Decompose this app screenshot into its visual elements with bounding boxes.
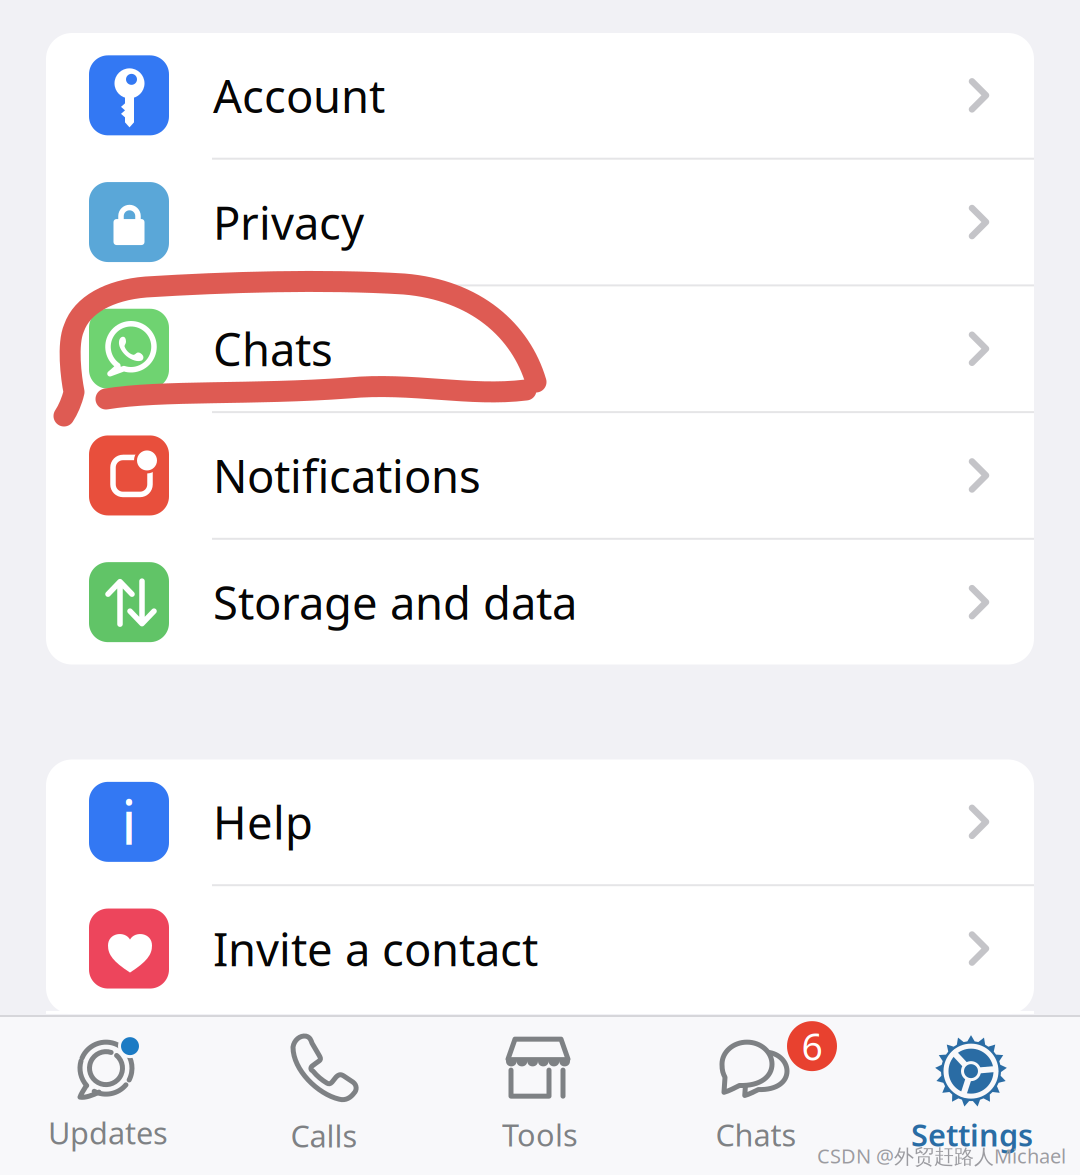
staticText: i [121, 780, 137, 861]
staticText: Invite a contact [213, 918, 538, 979]
staticText: Chats [715, 1114, 796, 1155]
button[interactable]: Calls [216, 1017, 432, 1175]
staticText: Settings [911, 1114, 1033, 1155]
staticText: 6 [801, 1021, 822, 1071]
staticText: Chats [213, 319, 333, 379]
button[interactable]: Tools [432, 1017, 648, 1175]
staticText: Tools [502, 1114, 578, 1155]
staticText: Privacy [213, 192, 364, 252]
button[interactable]: i [46, 759, 1034, 884]
staticText: Calls [290, 1115, 357, 1156]
button[interactable]: Updates [0, 1017, 216, 1175]
button[interactable]: Chats [46, 286, 1034, 411]
button[interactable]: Storage and data [46, 540, 1034, 664]
staticText: Updates [48, 1112, 168, 1153]
staticText: Notifications [213, 445, 481, 505]
staticText: Storage and data [213, 572, 577, 632]
button[interactable]: Settings [864, 1017, 1080, 1175]
button[interactable]: Notifications [46, 413, 1034, 538]
staticText: Account [213, 65, 385, 125]
button[interactable]: Privacy [46, 160, 1034, 284]
staticText: CSDN @外贸赶路人Michael [817, 1142, 1066, 1169]
staticText: Help [213, 792, 313, 852]
button[interactable]: 6 [648, 1017, 864, 1175]
button[interactable]: Invite a contact [46, 886, 1034, 1011]
button[interactable]: Account [46, 33, 1034, 158]
